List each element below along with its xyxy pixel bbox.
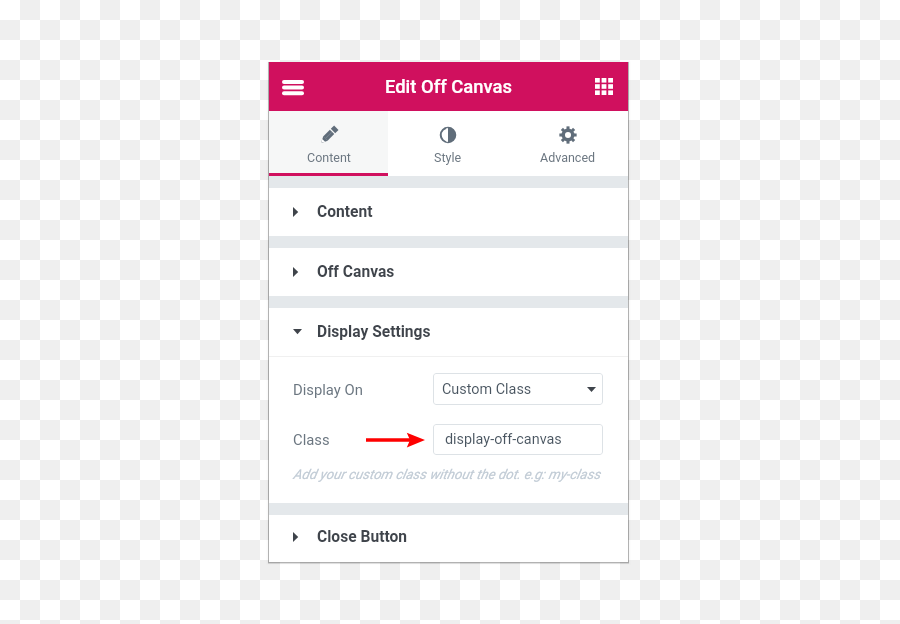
button[interactable]: Menu: [273, 67, 312, 106]
staticText: Close Button: [317, 528, 408, 546]
staticText: Content: [317, 203, 373, 221]
staticText: Display On: [293, 381, 363, 398]
button[interactable]: Apps: [584, 67, 623, 106]
button[interactable]: Content: [269, 111, 388, 176]
button[interactable]: Custom Class: [433, 373, 603, 405]
staticText: Edit Off Canvas: [385, 76, 512, 98]
staticText: Add your custom class without the dot. e…: [293, 466, 601, 482]
staticText: Content: [307, 150, 351, 165]
button[interactable]: display-off-canvas: [433, 424, 603, 455]
staticText: Style: [434, 150, 462, 165]
staticText: Custom Class: [442, 381, 532, 398]
button[interactable]: Advanced: [508, 111, 628, 176]
button[interactable]: Off Canvas: [269, 248, 628, 296]
button[interactable]: Style: [388, 111, 508, 176]
staticText: Class: [293, 431, 330, 448]
staticText: Display Settings: [317, 323, 431, 341]
staticText: display-off-canvas: [445, 431, 562, 448]
button[interactable]: Display Settings: [269, 308, 628, 356]
staticText: Off Canvas: [317, 263, 395, 281]
button[interactable]: Content: [269, 188, 628, 236]
button[interactable]: Close Button: [269, 515, 628, 559]
staticText: Advanced: [540, 150, 596, 165]
